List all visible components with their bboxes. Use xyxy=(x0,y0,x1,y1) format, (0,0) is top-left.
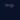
staticText: Rings xyxy=(5,2,14,8)
